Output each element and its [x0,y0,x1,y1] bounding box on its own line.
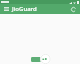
button[interactable]: Refresh [69,5,78,14]
button[interactable]: Open navigation menu [2,5,10,13]
staticText: JioGuard [12,5,69,13]
